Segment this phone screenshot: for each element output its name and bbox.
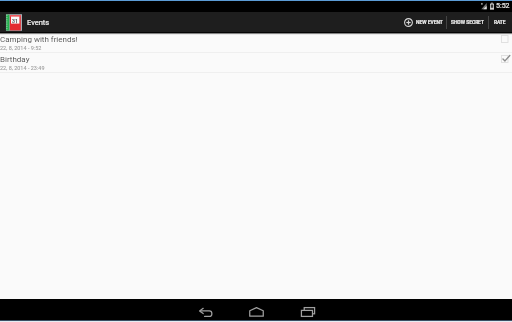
button[interactable]: RATE xyxy=(489,12,512,33)
button[interactable]: Camping with friends! xyxy=(0,33,512,53)
button[interactable]: Recent apps xyxy=(289,299,326,322)
button[interactable]: SHOW SECRET xyxy=(447,12,488,33)
staticText: 22, 8, 2014 - 9:52 xyxy=(0,45,42,51)
staticText: 31 xyxy=(12,17,18,24)
staticText: NEW EVENT xyxy=(416,19,443,26)
staticText: Birthday xyxy=(0,55,30,64)
staticText: RATE xyxy=(494,19,506,26)
button[interactable]: Back xyxy=(187,299,224,322)
button[interactable]: NEW EVENT xyxy=(400,12,446,33)
staticText: SHOW SECRET xyxy=(451,19,484,26)
staticText: 5:52 xyxy=(496,2,510,10)
staticText: Events xyxy=(27,18,50,27)
button[interactable]: Home xyxy=(238,299,275,322)
staticText: 22, 8, 2014 - 23:49 xyxy=(0,65,45,71)
button[interactable]: Birthday xyxy=(0,53,512,73)
staticText: Camping with friends! xyxy=(0,35,78,44)
